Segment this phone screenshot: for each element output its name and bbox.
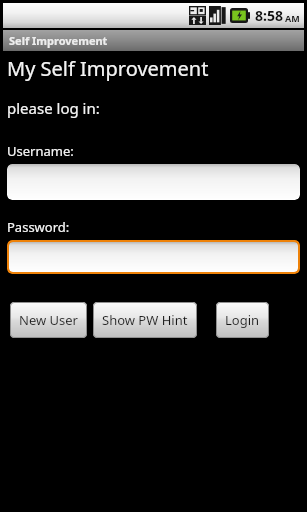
other: Battery charging — [230, 8, 250, 23]
other: Signal strength — [209, 6, 226, 25]
button[interactable]: Username input — [7, 164, 300, 200]
staticText: please log in: — [7, 98, 100, 118]
staticText: Login — [225, 311, 260, 329]
other: 3G data — [189, 6, 206, 25]
staticText: Self Improvement — [9, 33, 108, 48]
staticText: 8:58 — [255, 6, 283, 25]
staticText: Show PW Hint — [102, 311, 188, 329]
staticText: My Self Improvement — [7, 55, 209, 82]
button[interactable]: Password input — [7, 240, 300, 274]
button[interactable]: Show PW Hint — [93, 302, 197, 338]
staticText: Username: — [7, 142, 74, 160]
staticText: AM — [285, 12, 300, 24]
staticText: New User — [19, 311, 78, 329]
button[interactable]: New User — [10, 302, 87, 338]
staticText: Password: — [7, 218, 70, 236]
button[interactable]: Login — [216, 302, 269, 338]
